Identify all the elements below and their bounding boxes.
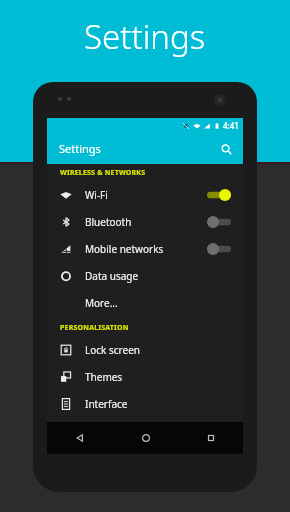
staticText: WIRELESS & NETWORKS — [60, 168, 146, 178]
staticText: Settings — [59, 141, 101, 156]
staticText: Bluetooth — [85, 215, 207, 229]
staticText: Themes — [85, 370, 231, 384]
staticText: More... — [85, 296, 231, 310]
staticText: Status bar — [85, 424, 231, 438]
button[interactable]: Wi-Fi — [47, 181, 243, 208]
button[interactable]: Mobile networks off — [207, 243, 231, 255]
staticText: Wi-Fi — [85, 188, 207, 202]
button[interactable]: Lock screen — [47, 336, 243, 363]
button[interactable]: Themes — [47, 363, 243, 390]
staticText: 4:41 — [223, 120, 239, 131]
button[interactable]: Mobile networks — [47, 235, 243, 262]
staticText: Data usage — [85, 269, 231, 283]
button[interactable]: Home — [113, 422, 178, 454]
button[interactable]: More... — [47, 289, 243, 316]
button[interactable]: Status bar — [47, 417, 243, 444]
staticText: PERSONALISATION — [60, 323, 129, 333]
staticText: Mobile networks — [85, 242, 207, 256]
staticText: Interface — [85, 397, 231, 411]
button[interactable]: Interface — [47, 390, 243, 417]
staticText: Lock screen — [85, 343, 231, 357]
button[interactable]: Bluetooth off — [207, 216, 231, 228]
button[interactable]: Data usage — [47, 262, 243, 289]
staticText: Settings — [84, 14, 206, 59]
button[interactable]: Search — [216, 139, 236, 159]
button[interactable]: Wi-Fi on — [207, 189, 231, 201]
button[interactable]: Recents — [178, 422, 243, 454]
button[interactable]: Bluetooth — [47, 208, 243, 235]
button[interactable]: Back — [47, 422, 113, 454]
